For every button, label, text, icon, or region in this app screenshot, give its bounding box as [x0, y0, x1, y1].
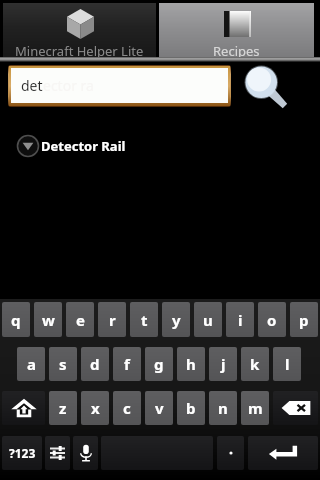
- staticText: p: [299, 310, 309, 330]
- staticText: m: [248, 398, 263, 418]
- staticText: n: [218, 398, 228, 418]
- button[interactable]: Symbols: [2, 436, 42, 470]
- staticText: k: [250, 354, 260, 374]
- button[interactable]: i: [226, 302, 254, 337]
- button[interactable]: Space: [101, 436, 213, 470]
- button[interactable]: h: [177, 347, 205, 381]
- button[interactable]: f: [113, 347, 141, 381]
- staticText: u: [203, 310, 213, 330]
- button[interactable]: s: [49, 347, 77, 381]
- button[interactable]: a: [17, 347, 45, 381]
- staticText: Minecraft Helper Lite: [15, 42, 144, 60]
- staticText: det: [21, 76, 43, 95]
- staticText: o: [267, 310, 277, 330]
- button[interactable]: Minecraft Helper Lite: [3, 3, 156, 57]
- button[interactable]: r: [98, 302, 126, 337]
- staticText: d: [90, 354, 100, 374]
- button[interactable]: q: [2, 302, 30, 337]
- button[interactable]: k: [241, 347, 269, 381]
- staticText: c: [123, 398, 131, 418]
- staticText: y: [172, 310, 181, 330]
- button[interactable]: y: [162, 302, 190, 337]
- button[interactable]: z: [49, 391, 77, 425]
- staticText: v: [155, 398, 164, 418]
- staticText: Recipes: [213, 42, 260, 60]
- staticText: q: [11, 310, 21, 330]
- button[interactable]: t: [130, 302, 158, 337]
- staticText: ?123: [9, 445, 36, 461]
- staticText: x: [91, 398, 100, 418]
- staticText: i: [238, 310, 243, 330]
- staticText: b: [186, 398, 196, 418]
- button[interactable]: g: [145, 347, 173, 381]
- button[interactable]: l: [273, 347, 301, 381]
- staticText: w: [42, 310, 55, 330]
- staticText: s: [59, 354, 67, 374]
- button[interactable]: Voice input: [73, 436, 98, 470]
- button[interactable]: e: [66, 302, 94, 337]
- button[interactable]: n: [209, 391, 237, 425]
- staticText: j: [221, 354, 226, 374]
- button[interactable]: j: [209, 347, 237, 381]
- button[interactable]: x: [81, 391, 109, 425]
- staticText: e: [76, 310, 85, 330]
- button[interactable]: det: [11, 68, 228, 103]
- button[interactable]: p: [290, 302, 318, 337]
- button[interactable]: u: [194, 302, 222, 337]
- staticText: h: [186, 354, 196, 374]
- button[interactable]: Backspace: [273, 391, 318, 425]
- staticText: g: [154, 354, 164, 374]
- staticText: Detector Rail: [41, 137, 126, 155]
- staticText: r: [109, 310, 116, 330]
- staticText: l: [285, 354, 290, 374]
- staticText: a: [27, 354, 36, 374]
- button[interactable]: Shift: [2, 391, 45, 425]
- button[interactable]: Recipes: [159, 3, 314, 57]
- button[interactable]: Enter: [248, 436, 318, 470]
- button[interactable]: Keyboard settings: [45, 436, 70, 470]
- button[interactable]: o: [258, 302, 286, 337]
- button[interactable]: b: [177, 391, 205, 425]
- button[interactable]: Detector Rail: [0, 133, 320, 159]
- button[interactable]: Search: [242, 63, 283, 104]
- button[interactable]: d: [81, 347, 109, 381]
- staticText: f: [124, 354, 130, 374]
- staticText: z: [59, 398, 67, 418]
- button[interactable]: m: [241, 391, 269, 425]
- staticText: t: [141, 310, 148, 330]
- button[interactable]: c: [113, 391, 141, 425]
- button[interactable]: w: [34, 302, 62, 337]
- button[interactable]: v: [145, 391, 173, 425]
- button[interactable]: Period: [217, 436, 244, 470]
